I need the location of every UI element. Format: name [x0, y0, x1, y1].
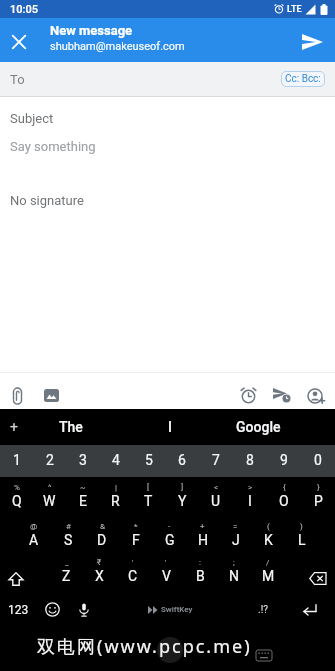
- staticText: N: [229, 568, 239, 584]
- button[interactable]: ': [116, 558, 149, 595]
- button[interactable]: ': [149, 558, 183, 595]
- staticText: 6: [178, 452, 186, 468]
- button[interactable]: [299, 382, 333, 409]
- button[interactable]: ): [285, 522, 318, 559]
- button[interactable]: [285, 592, 335, 627]
- staticText: 2: [46, 452, 54, 468]
- staticText: &: [100, 522, 105, 531]
- staticText: ₹: [97, 558, 102, 567]
- staticText: }: [317, 483, 320, 492]
- button[interactable]: [34, 382, 68, 409]
- button[interactable]: @: [17, 522, 51, 559]
- button[interactable]: %: [0, 478, 33, 523]
- staticText: U: [211, 493, 221, 509]
- staticText: O: [279, 493, 289, 509]
- button[interactable]: #: [51, 522, 85, 559]
- button[interactable]: Say something: [10, 139, 96, 154]
- staticText: S: [64, 532, 73, 548]
- button[interactable]: Cc: Bcc:: [281, 71, 325, 87]
- button[interactable]: 7: [199, 445, 233, 477]
- button[interactable]: Subject: [10, 111, 54, 126]
- staticText: +: [10, 419, 18, 435]
- button[interactable]: The: [28, 409, 114, 445]
- staticText: :: [199, 558, 201, 567]
- button[interactable]: +: [0, 409, 28, 445]
- staticText: -: [168, 522, 171, 531]
- staticText: |: [115, 483, 117, 492]
- staticText: P: [314, 493, 323, 509]
- staticText: K: [264, 532, 273, 548]
- staticText: R: [111, 493, 120, 509]
- staticText: %: [14, 483, 20, 492]
- button[interactable]: 6: [165, 445, 199, 477]
- button[interactable]: .!?: [240, 592, 285, 627]
- staticText: T: [144, 493, 153, 509]
- button[interactable]: [37, 592, 67, 627]
- button[interactable]: }: [301, 478, 335, 523]
- button[interactable]: [0, 560, 50, 597]
- staticText: No signature: [10, 193, 84, 208]
- button[interactable]: 4: [99, 445, 132, 477]
- staticText: 5: [145, 452, 153, 468]
- button[interactable]: &: [85, 522, 119, 559]
- button[interactable]: 9: [267, 445, 301, 477]
- button[interactable]: <: [199, 478, 233, 523]
- staticText: H: [198, 532, 208, 548]
- button[interactable]: _: [50, 558, 83, 595]
- button[interactable]: 1: [0, 445, 33, 477]
- staticText: _: [65, 558, 69, 567]
- button[interactable]: ]: [165, 478, 199, 523]
- staticText: @: [30, 522, 38, 531]
- button[interactable]: ₹: [83, 558, 116, 595]
- button[interactable]: (: [252, 522, 285, 559]
- button[interactable]: :: [183, 558, 217, 595]
- staticText: Y: [178, 493, 187, 509]
- button[interactable]: 2: [33, 445, 66, 477]
- staticText: {: [283, 483, 286, 492]
- staticText: 3: [79, 452, 87, 468]
- button[interactable]: /: [251, 558, 285, 595]
- button[interactable]: I: [114, 409, 226, 445]
- staticText: 123: [8, 603, 29, 617]
- button[interactable]: [289, 18, 335, 62]
- button[interactable]: [67, 592, 100, 627]
- button[interactable]: ^: [33, 478, 66, 523]
- button[interactable]: [0, 382, 34, 409]
- staticText: F: [132, 532, 140, 548]
- button[interactable]: SwiftKey: [100, 592, 240, 627]
- button[interactable]: [231, 382, 265, 409]
- button[interactable]: {: [267, 478, 301, 523]
- button[interactable]: 123: [0, 592, 37, 627]
- button[interactable]: 8: [233, 445, 267, 477]
- button[interactable]: |: [99, 478, 132, 523]
- staticText: Google: [236, 419, 281, 435]
- button[interactable]: [: [132, 478, 165, 523]
- button[interactable]: +: [186, 522, 219, 559]
- button[interactable]: ~: [66, 478, 99, 523]
- staticText: I: [248, 493, 252, 509]
- button[interactable]: >: [233, 478, 267, 523]
- staticText: D: [97, 532, 107, 548]
- staticText: L: [298, 532, 306, 548]
- button[interactable]: [285, 560, 335, 597]
- button[interactable]: 0: [301, 445, 335, 477]
- staticText: +: [200, 522, 205, 531]
- staticText: ~: [80, 483, 86, 492]
- button[interactable]: [0, 18, 38, 62]
- button[interactable]: ;: [217, 558, 251, 595]
- button[interactable]: *: [119, 522, 153, 559]
- staticText: ]: [181, 483, 184, 492]
- button[interactable]: Google: [226, 409, 290, 445]
- staticText: B: [196, 568, 205, 584]
- button[interactable]: =: [219, 522, 252, 559]
- staticText: ': [132, 558, 134, 567]
- button[interactable]: [265, 382, 299, 409]
- staticText: 8: [246, 452, 254, 468]
- staticText: Q: [12, 493, 22, 509]
- button[interactable]: -: [153, 522, 186, 559]
- button[interactable]: 5: [132, 445, 165, 477]
- button[interactable]: 3: [66, 445, 99, 477]
- staticText: ;: [233, 558, 235, 567]
- staticText: 7: [212, 452, 220, 468]
- staticText: M: [262, 568, 275, 584]
